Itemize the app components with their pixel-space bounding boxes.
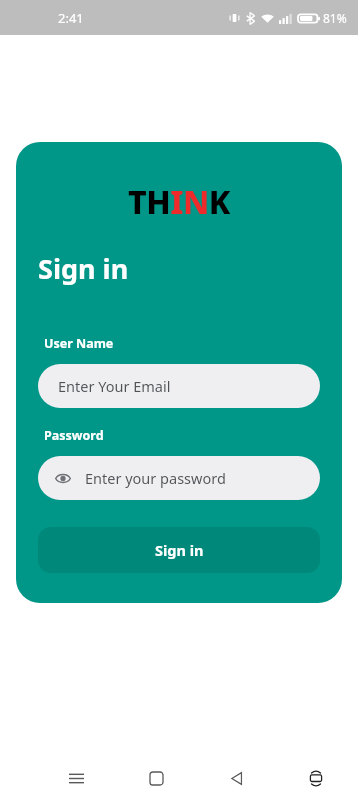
staticText: Password [44, 427, 104, 444]
staticText: THINK [128, 180, 230, 224]
button[interactable]: Show password [52, 467, 74, 489]
button[interactable]: Hide keyboard [296, 758, 336, 798]
staticText: 2:41 [58, 9, 84, 27]
staticText: 81% [323, 10, 347, 26]
button[interactable]: Recent apps [56, 758, 96, 798]
button[interactable]: Show password [38, 456, 320, 500]
button[interactable]: Enter Your Email [38, 364, 320, 408]
button[interactable]: Sign in [38, 527, 320, 573]
staticText: Sign in [155, 540, 204, 560]
staticText: Sign in [38, 250, 129, 287]
staticText: Enter Your Email [58, 376, 171, 396]
button[interactable]: Back [216, 758, 256, 798]
staticText: Enter your password [85, 468, 226, 488]
staticText: User Name [44, 335, 114, 352]
button[interactable]: Home [136, 758, 176, 798]
